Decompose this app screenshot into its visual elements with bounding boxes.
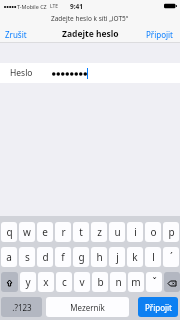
staticText: Připojit [145,302,172,313]
button[interactable]: b [92,272,108,292]
staticText: Připojit [146,29,173,40]
staticText: k [132,250,138,264]
staticText: n [115,275,122,289]
staticText: d [42,250,49,264]
staticText: Heslo [10,67,33,79]
button[interactable]: ´ [163,247,179,267]
staticText: s [25,250,30,264]
button[interactable]: h [91,247,107,267]
staticText: u [114,225,121,239]
staticText: g [78,250,85,264]
staticText: z [97,225,102,239]
button[interactable]: f [55,247,71,267]
button[interactable]: a [1,247,17,267]
staticText: h [96,250,103,264]
button[interactable]: .?123 [1,297,42,317]
staticText: Zadejte heslo k síti „iOT5“ [51,14,129,23]
staticText: y [25,275,31,289]
staticText: Zrušit [5,29,27,40]
button[interactable]: d [37,247,53,267]
button[interactable]: s [19,247,35,267]
staticText: e [42,225,48,239]
button[interactable]: j [109,247,125,267]
staticText: m [131,275,141,289]
button[interactable]: q [1,222,17,242]
button[interactable]: k [127,247,143,267]
button[interactable]: t [73,222,89,242]
staticText: .?123 [12,302,32,313]
button[interactable]: c [56,272,72,292]
button[interactable]: z [91,222,107,242]
button[interactable]: p [163,222,179,242]
button[interactable]: Mezerník [46,297,129,317]
staticText: x [43,275,49,289]
staticText: j [116,250,119,264]
button[interactable]: n [110,272,126,292]
staticText: a [6,250,12,264]
button[interactable]: Shift [1,272,18,292]
staticText: f [61,250,65,264]
staticText: T-Mobile CZ [17,3,47,10]
staticText: q [6,225,13,239]
button[interactable]: g [73,247,89,267]
staticText: o [150,225,157,239]
button[interactable]: x [38,272,54,292]
button[interactable]: r [55,222,71,242]
button[interactable]: ˇ [146,272,162,292]
staticText: 9:41 [70,2,83,11]
staticText: c [62,275,67,289]
button[interactable]: i [127,222,143,242]
staticText: b [97,275,104,289]
button[interactable]: Připojit [138,297,178,317]
button[interactable]: m [128,272,144,292]
button[interactable]: Připojit [142,24,180,43]
staticText: p [168,225,175,239]
button[interactable]: Zrušit [0,24,31,43]
button[interactable]: l [145,247,161,267]
staticText: v [79,275,85,289]
button[interactable]: e [37,222,53,242]
button[interactable]: y [20,272,36,292]
staticText: LTE [50,3,59,10]
staticText: Mezerník [70,302,105,313]
staticText: i [134,225,137,239]
button[interactable]: v [74,272,90,292]
staticText: Zadejte heslo [62,28,119,40]
button[interactable]: w [19,222,35,242]
button[interactable]: u [109,222,125,242]
staticText: ´ [170,250,173,264]
button[interactable]: Delete [164,272,180,292]
staticText: t [79,225,83,239]
staticText: ˇ [152,275,157,289]
staticText: l [152,250,155,264]
staticText: r [61,225,66,239]
button[interactable]: o [145,222,161,242]
staticText: w [23,225,31,239]
